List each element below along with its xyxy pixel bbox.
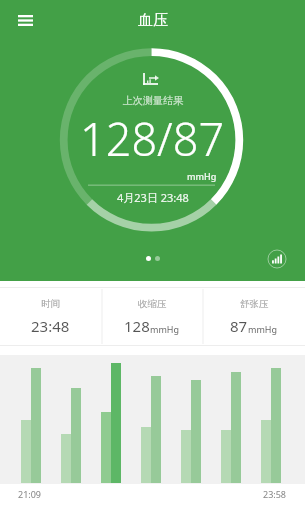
- staticText: 4月23日 23:48: [117, 190, 189, 205]
- staticText: 128/87: [80, 108, 225, 169]
- staticText: 23:48: [31, 316, 70, 336]
- staticText: 血压: [138, 11, 168, 30]
- button[interactable]: 收缩压: [101, 287, 203, 346]
- button[interactable]: Menu: [10, 6, 40, 34]
- staticText: 128: [124, 316, 150, 336]
- staticText: 收缩压: [138, 298, 167, 310]
- staticText: mmHg: [150, 323, 180, 335]
- staticText: 时间: [41, 298, 60, 310]
- button[interactable]: 时间: [0, 287, 101, 346]
- staticText: mmHg: [248, 323, 278, 335]
- staticText: 21:09: [18, 488, 42, 500]
- staticText: 87: [230, 316, 248, 336]
- button[interactable]: Statistics: [264, 246, 290, 272]
- staticText: 上次测量结果: [123, 94, 183, 107]
- staticText: 23:58: [263, 488, 287, 500]
- staticText: 舒张压: [240, 298, 269, 310]
- staticText: mmHg: [187, 170, 217, 182]
- button[interactable]: 舒张压: [203, 287, 305, 346]
